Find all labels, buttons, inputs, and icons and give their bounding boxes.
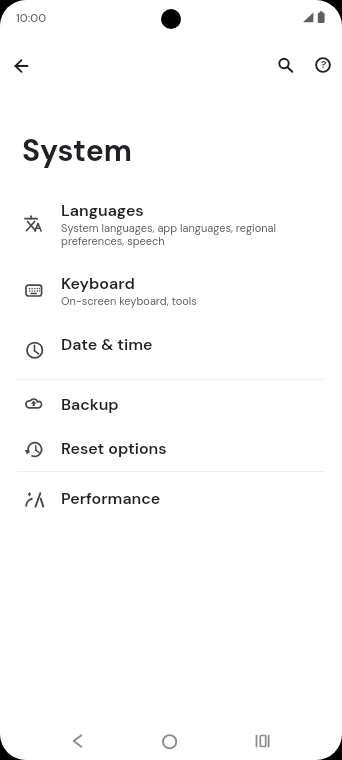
button[interactable] — [57, 721, 97, 760]
button[interactable] — [149, 721, 189, 760]
button[interactable]: Reset options — [0, 426, 342, 471]
staticText: Languages — [61, 200, 144, 221]
staticText: Backup — [61, 394, 119, 415]
staticText: System — [22, 131, 132, 170]
staticText: On-screen keyboard, tools — [61, 294, 197, 308]
button[interactable]: Keyboard — [0, 258, 342, 318]
button[interactable]: Backup — [0, 381, 342, 426]
button[interactable]: Performance — [0, 473, 342, 522]
staticText: Performance — [61, 488, 161, 509]
staticText: Date & time — [61, 334, 153, 355]
button[interactable] — [242, 721, 282, 760]
button[interactable]: Languages — [0, 186, 342, 258]
staticText: Reset options — [61, 438, 167, 459]
button[interactable]: ? — [303, 45, 342, 85]
staticText: ? — [321, 58, 327, 71]
button[interactable]: Date & time — [0, 318, 342, 379]
button[interactable] — [2, 46, 42, 86]
staticText: Keyboard — [61, 273, 135, 294]
staticText: 10:00 — [16, 11, 47, 26]
staticText: System languages, app languages, regiona… — [61, 221, 276, 235]
staticText: preferences, speech — [61, 234, 165, 248]
button[interactable] — [264, 45, 304, 85]
